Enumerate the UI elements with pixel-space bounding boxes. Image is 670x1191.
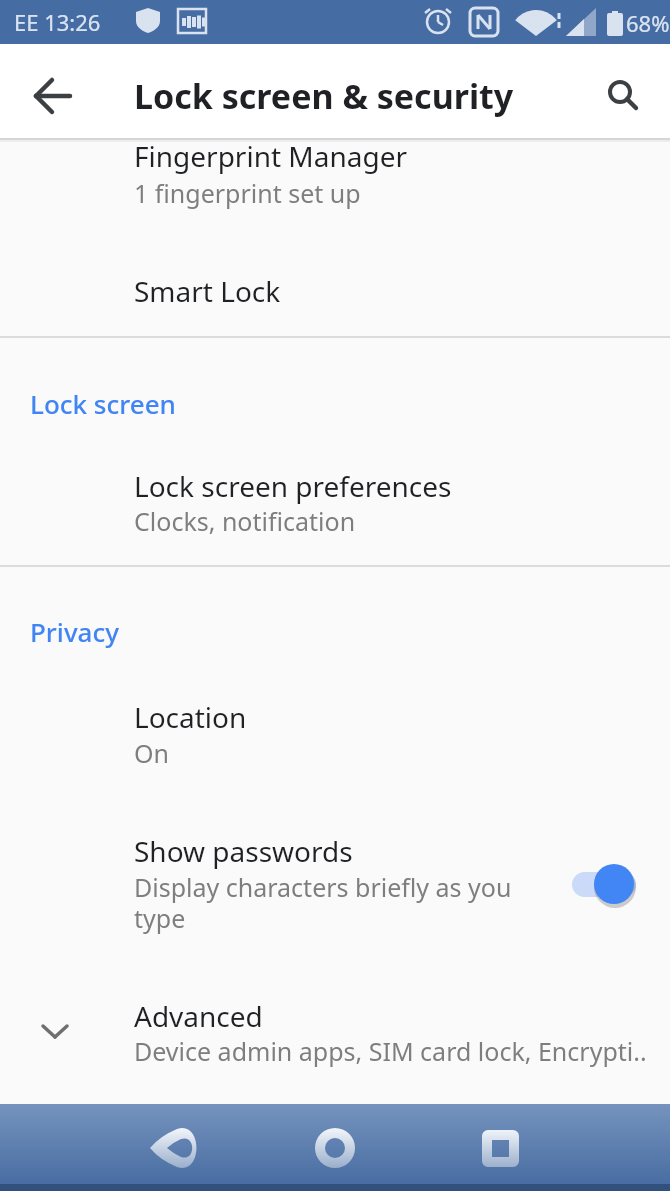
staticText: 1 fingerprint set up [134, 176, 361, 210]
staticText: Lock screen [30, 386, 176, 421]
staticText: EE 13:26 [14, 7, 101, 37]
staticText: Location [134, 698, 247, 736]
staticText: Fingerprint Manager [134, 142, 408, 175]
staticText: Advanced [134, 997, 263, 1035]
staticText: Device admin apps, SIM card lock, Encryp… [134, 1034, 647, 1068]
staticText: Smart Lock [134, 272, 281, 310]
staticText: 68% [626, 8, 670, 38]
staticText: Privacy [30, 614, 119, 649]
staticText: Lock screen & security [134, 73, 514, 119]
staticText: Show passwords [134, 832, 353, 870]
staticText: On [134, 736, 169, 770]
staticText: type [134, 901, 186, 935]
staticText: Clocks, notification [134, 504, 356, 538]
staticText: Lock screen preferences [134, 467, 452, 505]
staticText: Display characters briefly as you [134, 870, 512, 904]
